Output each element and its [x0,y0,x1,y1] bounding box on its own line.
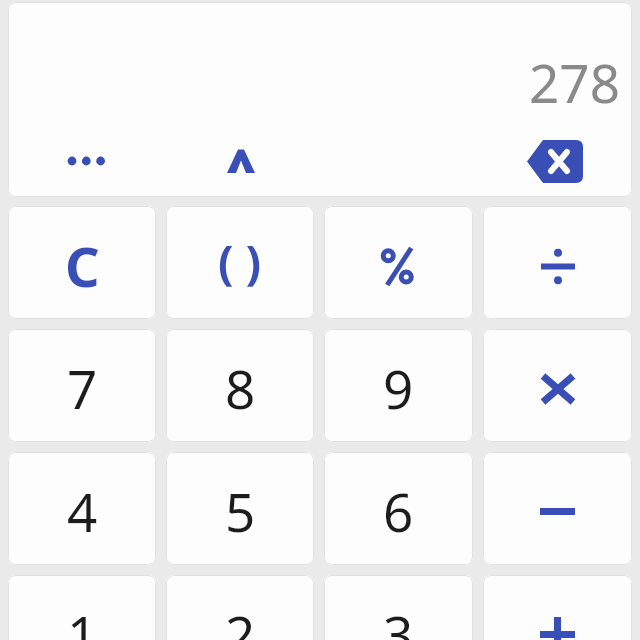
button[interactable]: 8 [166,329,314,442]
button[interactable]: 2 [166,575,314,640]
button[interactable] [483,575,632,640]
button[interactable]: 4 [8,452,156,565]
staticText: 4 [67,475,98,547]
button[interactable] [483,329,632,442]
staticText: 278 [529,46,620,118]
button[interactable] [216,140,264,184]
staticText: 2 [225,598,256,640]
button[interactable]: ( ) [166,206,314,319]
button[interactable]: 6 [324,452,473,565]
button[interactable] [49,136,113,184]
button[interactable]: 7 [8,329,156,442]
button[interactable]: C [8,206,156,319]
button[interactable]: 3 [324,575,473,640]
button[interactable] [483,452,632,565]
staticText: 7 [67,352,98,424]
button[interactable]: 1 [8,575,156,640]
staticText: 1 [67,598,98,640]
button[interactable] [483,206,632,319]
staticText: C [65,229,100,303]
staticText: 8 [225,352,256,424]
staticText: 6 [383,475,414,547]
staticText: 3 [383,598,414,640]
staticText: 9 [383,352,414,424]
staticText: ( ) [218,230,262,293]
staticText: 5 [225,475,256,547]
button[interactable] [324,206,473,319]
button[interactable] [527,140,583,183]
button[interactable]: 5 [166,452,314,565]
button[interactable]: 9 [324,329,473,442]
